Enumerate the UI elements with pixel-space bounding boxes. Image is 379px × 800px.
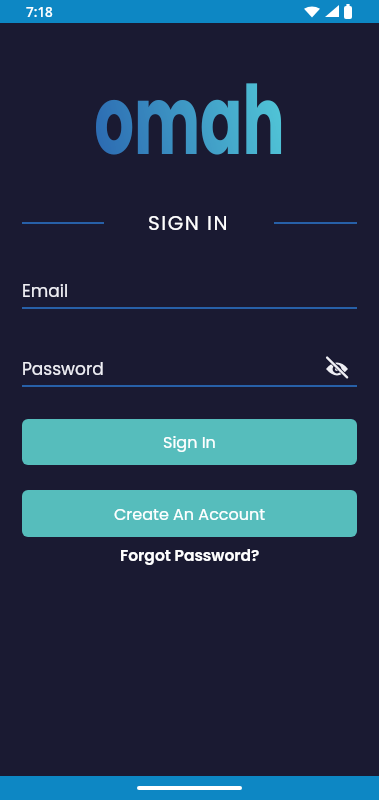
button[interactable] xyxy=(326,358,348,380)
staticText: Create An Account xyxy=(114,503,266,525)
button[interactable]: Create An Account xyxy=(22,490,357,537)
button[interactable]: Email xyxy=(22,279,357,309)
staticText: Sign In xyxy=(163,431,216,453)
staticText: Email xyxy=(22,279,69,303)
staticText: Password xyxy=(22,357,326,381)
staticText: omah xyxy=(94,53,285,187)
staticText: 7:18 xyxy=(26,3,53,21)
button[interactable]: Forgot Password? xyxy=(116,541,264,571)
button[interactable]: Password xyxy=(22,357,357,387)
button[interactable]: Sign In xyxy=(22,419,357,465)
staticText: SIGN IN xyxy=(148,209,230,237)
